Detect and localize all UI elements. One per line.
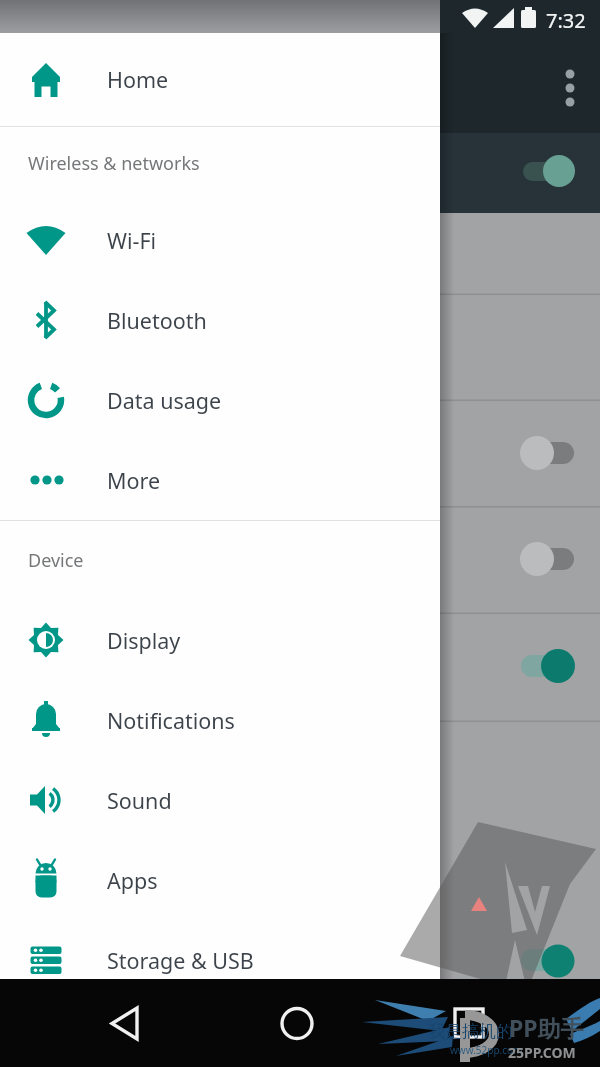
staticText: 25PP.COM <box>508 1043 576 1062</box>
staticText: Notifications <box>107 706 235 735</box>
button[interactable]: Sound <box>0 760 440 840</box>
button[interactable]: Display <box>0 600 440 680</box>
staticText: Data usage <box>107 386 222 415</box>
staticText: Storage & USB <box>107 946 254 975</box>
button[interactable]: Apps <box>0 840 440 920</box>
button[interactable]: Data usage <box>0 360 440 440</box>
staticText: PP助手 <box>509 1012 584 1043</box>
staticText: Apps <box>107 866 158 895</box>
staticText: Device <box>28 548 84 573</box>
staticText: 我是搞机的 <box>428 1021 513 1042</box>
staticText: Display <box>107 626 181 655</box>
button[interactable]: Notifications <box>0 680 440 760</box>
button[interactable]: Home <box>0 33 440 126</box>
staticText: Home <box>107 65 169 94</box>
button[interactable]: Bluetooth <box>0 280 440 360</box>
button[interactable]: Wi-Fi <box>0 200 440 280</box>
button[interactable]: Storage & USB <box>0 920 440 1000</box>
staticText: 7:32 <box>546 7 586 34</box>
staticText: Bluetooth <box>107 306 207 335</box>
button[interactable]: More <box>0 440 440 520</box>
staticText: Wi-Fi <box>107 226 157 255</box>
staticText: Wireless & networks <box>28 151 200 176</box>
staticText: Sound <box>107 786 172 815</box>
staticText: More <box>107 466 161 495</box>
staticText: www.52pp.com <box>450 1043 523 1057</box>
